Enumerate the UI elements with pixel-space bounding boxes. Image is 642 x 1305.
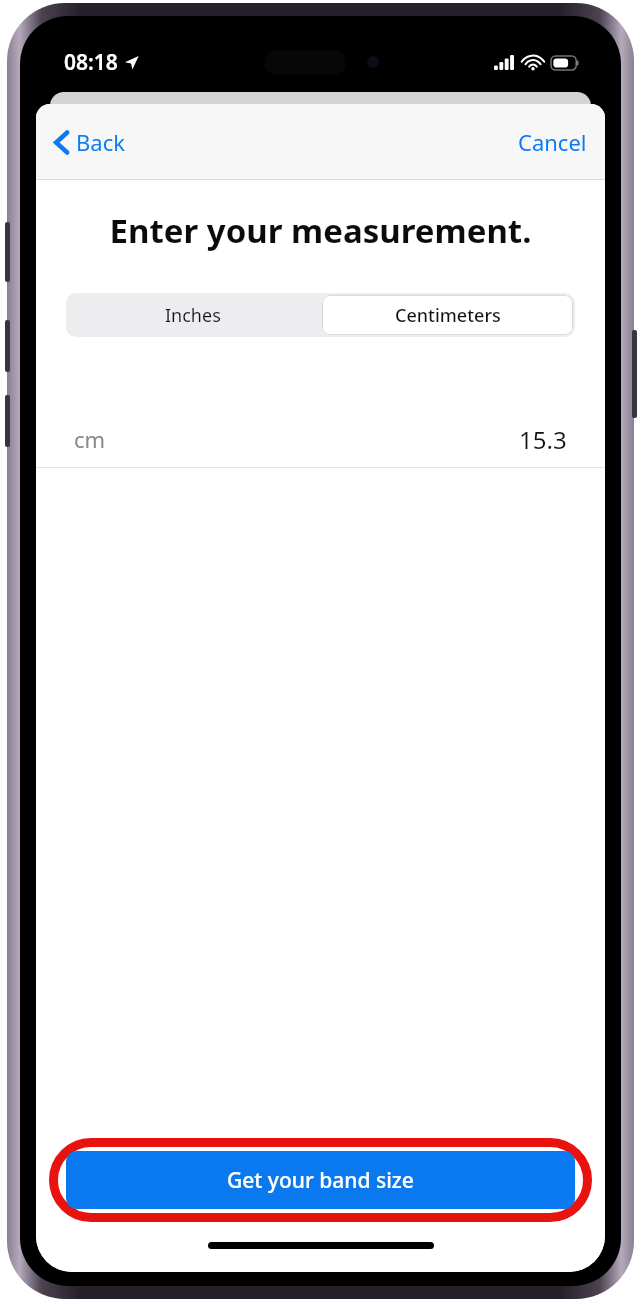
button[interactable]: cm (36, 411, 605, 467)
staticText: Inches (165, 303, 221, 328)
staticText: Centimeters (395, 303, 501, 328)
button[interactable]: Inches (66, 293, 320, 337)
staticText: 08:18 (64, 48, 118, 77)
button[interactable]: Cancel (508, 119, 597, 165)
staticText: 15.3 (519, 423, 567, 456)
button[interactable]: Centimeters (322, 295, 573, 335)
staticText: Back (76, 127, 125, 157)
button[interactable]: Back (44, 119, 135, 165)
staticText: Enter your measurement. (54, 208, 587, 253)
staticText: Cancel (518, 127, 587, 157)
staticText: Get your band size (227, 1166, 414, 1195)
button[interactable]: Get your band size (66, 1151, 575, 1209)
staticText: cm (74, 424, 106, 454)
